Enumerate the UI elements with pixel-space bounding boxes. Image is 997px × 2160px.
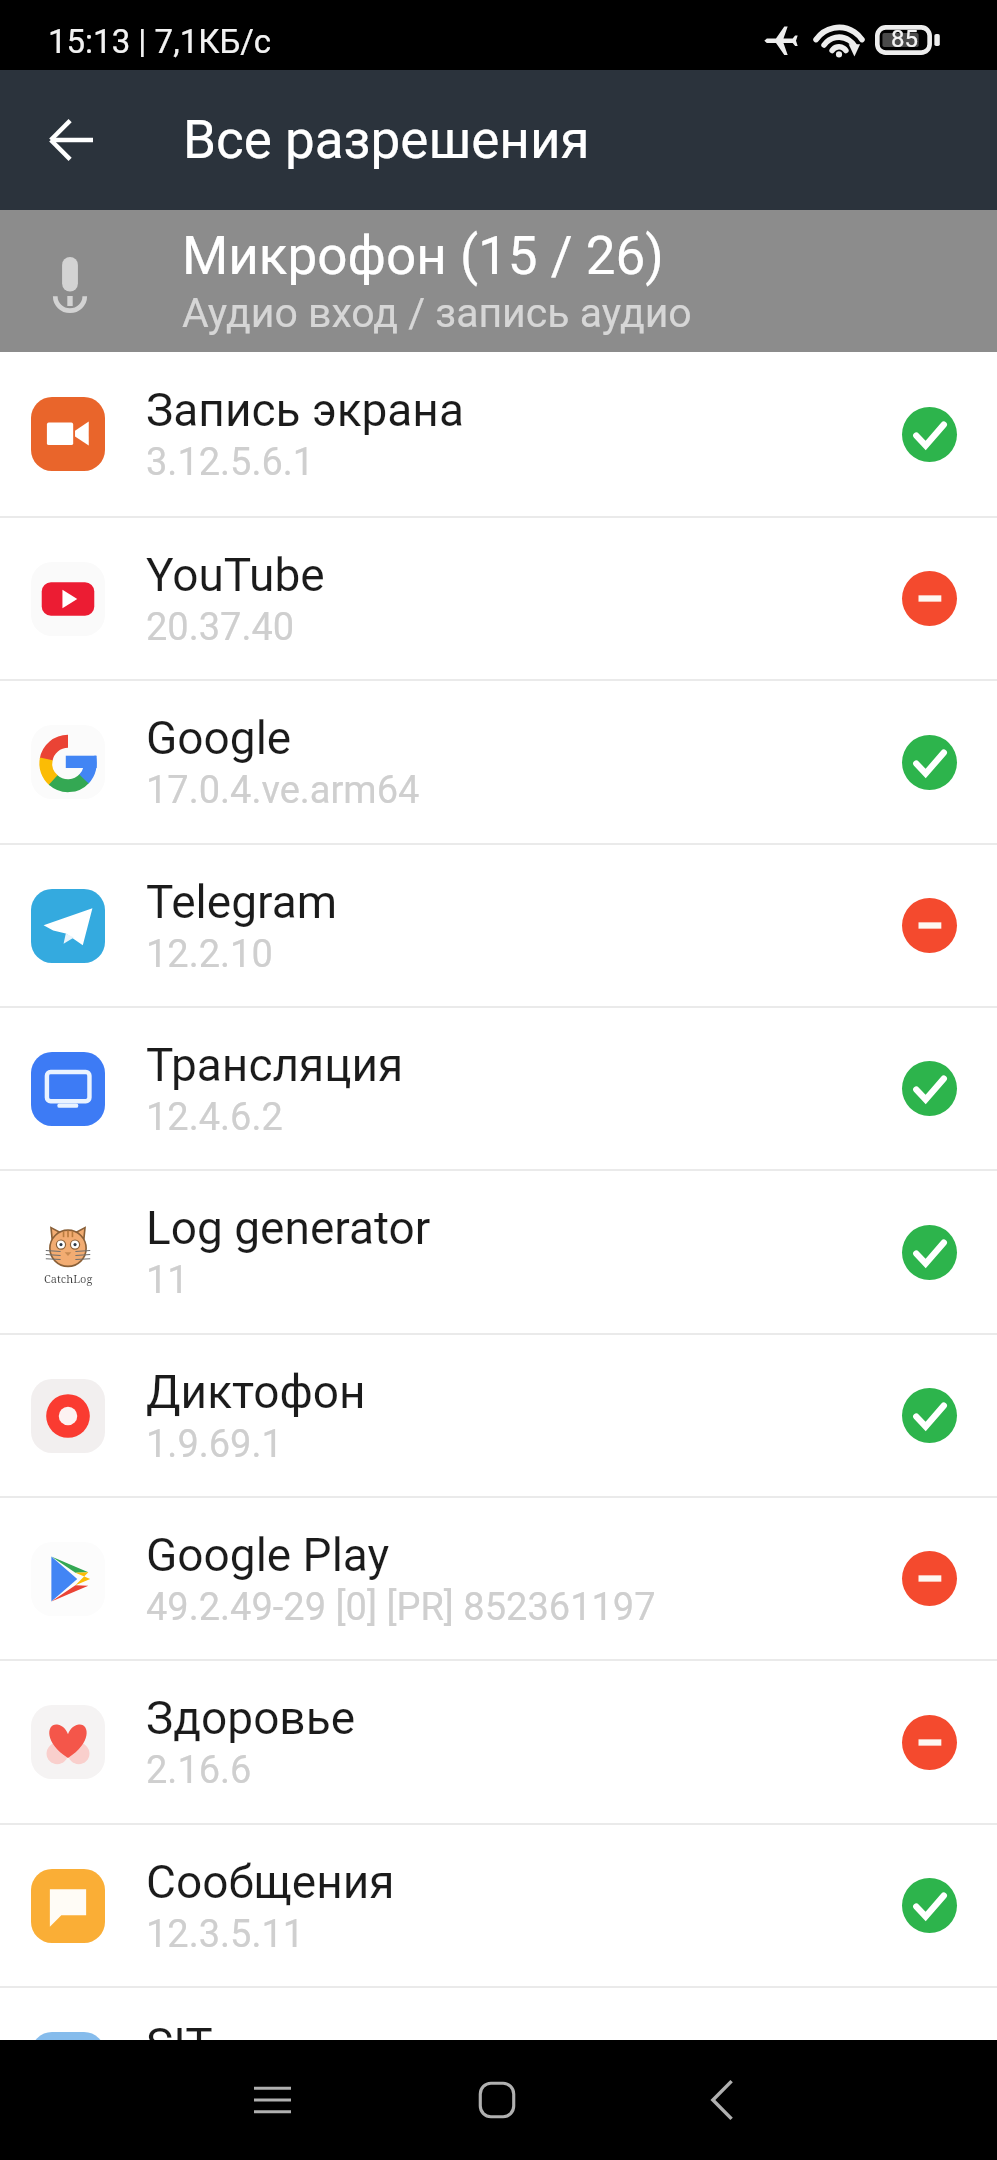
- button[interactable]: Сообщения: [0, 1825, 997, 1986]
- button[interactable]: Последние приложения: [217, 2045, 327, 2155]
- staticText: Telegram: [146, 875, 338, 929]
- staticText: Google: [146, 711, 292, 765]
- staticText: 15:13 | 7,1КБ/с: [48, 22, 272, 61]
- staticText: Микрофон (15 / 26): [182, 225, 664, 287]
- staticText: SIT: [146, 2018, 213, 2040]
- button[interactable]: Диктофон: [0, 1335, 997, 1496]
- staticText: 17.0.4.ve.arm64: [146, 768, 420, 813]
- staticText: YouTube: [146, 548, 325, 602]
- staticText: 85: [891, 25, 918, 53]
- staticText: 1.9.69.1: [146, 1422, 283, 1467]
- staticText: 12.4.6.2: [146, 1095, 283, 1140]
- button[interactable]: Здоровье: [0, 1661, 997, 1823]
- staticText: 2.16.6: [146, 1748, 252, 1793]
- button[interactable]: Главный экран: [442, 2045, 552, 2155]
- staticText: Google Play: [146, 1528, 390, 1582]
- button[interactable]: Telegram: [0, 845, 997, 1006]
- button[interactable]: Google Play: [0, 1498, 997, 1659]
- staticText: Log generator: [146, 1201, 431, 1255]
- staticText: 12.3.5.11: [146, 1912, 305, 1957]
- staticText: 3.12.5.6.1: [146, 440, 315, 485]
- button[interactable]: CatchLog: [0, 1171, 997, 1333]
- staticText: CatchLog: [44, 1271, 93, 1286]
- staticText: Запись экрана: [146, 383, 464, 437]
- button[interactable]: Google: [0, 681, 997, 843]
- staticText: Все разрешения: [183, 109, 590, 171]
- staticText: 12.2.10: [146, 932, 273, 977]
- staticText: 49.2.49-29 [0] [PR] 852361197: [146, 1585, 656, 1630]
- button[interactable]: Назад: [667, 2045, 777, 2155]
- button[interactable]: Назад: [27, 96, 115, 184]
- button[interactable]: SIT: [0, 1988, 997, 2040]
- staticText: Здоровье: [146, 1691, 356, 1745]
- staticText: Аудио вход / запись аудио: [182, 289, 692, 337]
- button[interactable]: YouTube: [0, 518, 997, 679]
- staticText: Сообщения: [146, 1855, 395, 1909]
- button[interactable]: Микрофон (15 / 26): [0, 210, 997, 352]
- button[interactable]: Запись экрана: [0, 352, 997, 516]
- staticText: 20.37.40: [146, 605, 295, 650]
- staticText: Трансляция: [146, 1038, 404, 1092]
- staticText: Диктофон: [146, 1365, 366, 1419]
- staticText: 11: [146, 1258, 189, 1303]
- button[interactable]: Трансляция: [0, 1008, 997, 1169]
